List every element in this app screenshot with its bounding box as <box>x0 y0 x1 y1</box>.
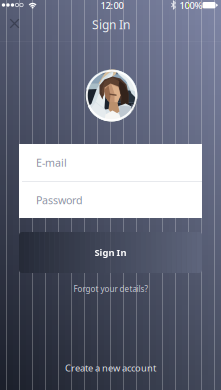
staticText: Sign In <box>94 246 126 259</box>
staticText: Forgot your details? <box>73 284 147 294</box>
button[interactable]: Create a new account <box>0 346 221 390</box>
button[interactable]: Close <box>0 8 31 38</box>
button[interactable]: E-mail <box>19 144 202 181</box>
staticText: 12:00 <box>100 0 123 12</box>
button[interactable]: Forgot your details? <box>60 279 160 299</box>
staticText: Sign In <box>92 16 130 32</box>
staticText: E-mail <box>36 155 67 170</box>
button[interactable]: Sign In <box>19 232 202 273</box>
staticText: 100% <box>179 0 202 12</box>
staticText: Create a new account <box>65 362 156 374</box>
staticText: Password <box>36 193 83 207</box>
button[interactable]: Password <box>19 182 202 218</box>
